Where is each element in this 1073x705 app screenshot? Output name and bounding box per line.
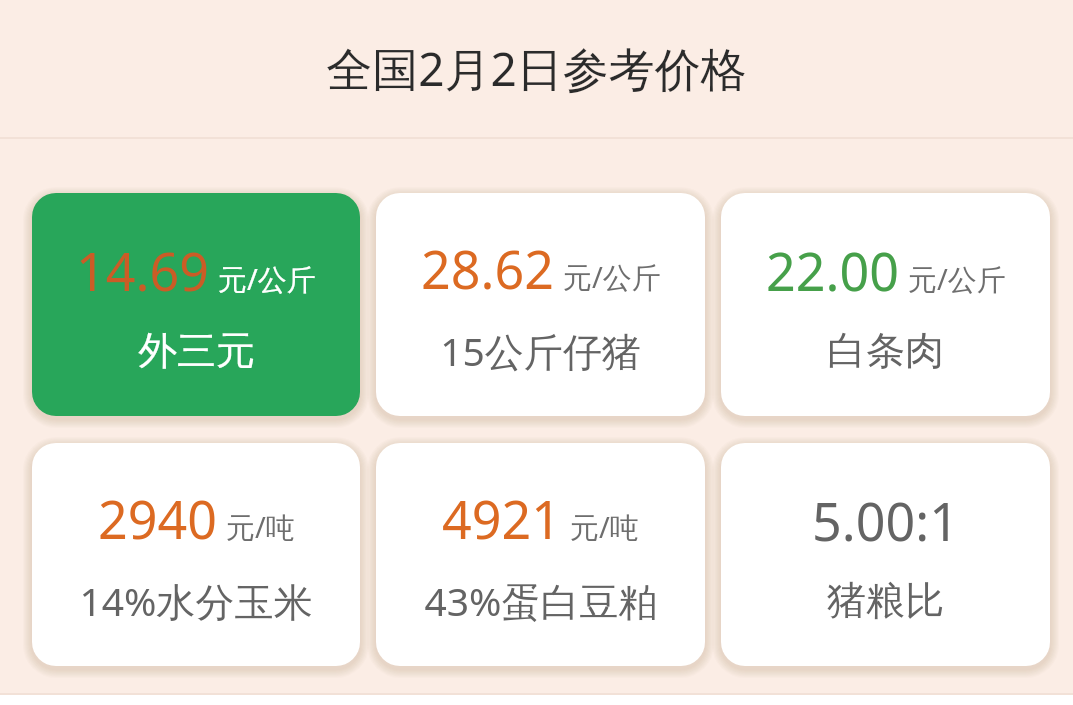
staticText: 4921 bbox=[442, 483, 561, 554]
staticText: 元/公斤 bbox=[908, 259, 1006, 299]
staticText: 全国2月2日参考价格 bbox=[326, 37, 747, 100]
staticText: 2940 bbox=[98, 483, 217, 554]
staticText: 元/公斤 bbox=[218, 259, 316, 299]
button[interactable]: 22.00 bbox=[721, 193, 1050, 416]
staticText: 元/吨 bbox=[226, 507, 295, 547]
button[interactable]: 2940 bbox=[32, 443, 360, 666]
staticText: 28.62 bbox=[421, 233, 554, 304]
staticText: 元/吨 bbox=[570, 507, 639, 547]
staticText: 外三元 bbox=[138, 326, 255, 375]
staticText: 元/公斤 bbox=[563, 257, 661, 297]
staticText: 猪粮比 bbox=[827, 576, 944, 625]
staticText: 白条肉 bbox=[827, 326, 944, 375]
staticText: 15公斤仔猪 bbox=[440, 324, 641, 377]
staticText: 14.69 bbox=[76, 235, 209, 306]
button[interactable]: 14.69 bbox=[32, 193, 360, 416]
staticText: 14%水分玉米 bbox=[79, 574, 313, 627]
staticText: 43%蛋白豆粕 bbox=[424, 574, 658, 627]
button[interactable]: 28.62 bbox=[376, 193, 705, 416]
staticText: 5.00:1 bbox=[812, 485, 959, 556]
button[interactable]: 4921 bbox=[376, 443, 705, 666]
button[interactable]: 5.00:1 bbox=[721, 443, 1050, 666]
staticText: 22.00 bbox=[766, 235, 899, 306]
